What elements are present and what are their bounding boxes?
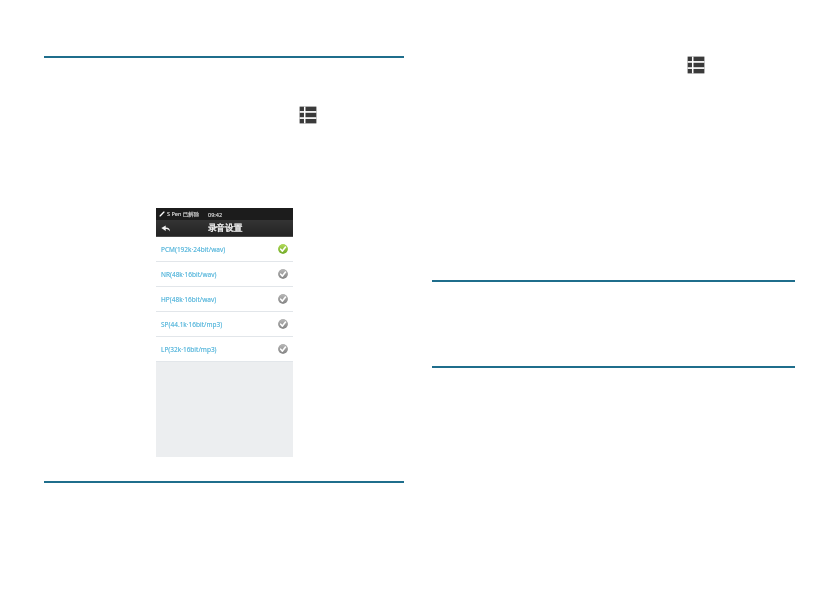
staticText: S Pen 已解除 (167, 210, 200, 218)
staticText: HP(48k·16bit/wav) (161, 295, 278, 304)
staticText: NR(48k·16bit/wav) (161, 270, 278, 279)
button[interactable]: List view (686, 55, 706, 75)
button[interactable]: HP(48k·16bit/wav) (156, 287, 293, 311)
staticText: 09:42 (208, 211, 223, 218)
button[interactable]: PCM(192k·24bit/wav) (156, 237, 293, 261)
staticText: PCM(192k·24bit/wav) (161, 245, 278, 254)
button[interactable]: NR(48k·16bit/wav) (156, 262, 293, 286)
staticText: LP(32k·16bit/mp3) (161, 345, 278, 354)
staticText: SP(44.1k·16bit/mp3) (161, 320, 278, 329)
staticText: 录音设置 (208, 223, 242, 234)
button[interactable]: LP(32k·16bit/mp3) (156, 337, 293, 361)
button[interactable]: SP(44.1k·16bit/mp3) (156, 312, 293, 336)
button[interactable]: Back (160, 223, 171, 234)
button[interactable]: List view (298, 105, 318, 125)
